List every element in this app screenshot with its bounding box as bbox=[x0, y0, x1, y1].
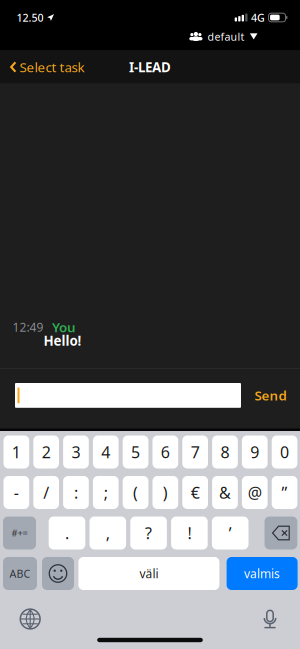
staticText: ’ bbox=[229, 522, 232, 544]
button[interactable]: Select task bbox=[0, 50, 92, 83]
staticText: 0 bbox=[280, 441, 289, 463]
button[interactable]: ( bbox=[123, 476, 148, 509]
staticText: € bbox=[191, 482, 200, 503]
button[interactable]: - bbox=[3, 476, 29, 509]
staticText: 12:49 bbox=[12, 319, 43, 335]
staticText: & bbox=[219, 482, 231, 503]
button[interactable]: . bbox=[49, 516, 85, 549]
button[interactable]: Send bbox=[241, 378, 300, 412]
button[interactable]: ? bbox=[130, 516, 167, 549]
button[interactable]: / bbox=[33, 476, 59, 509]
staticText: 9 bbox=[250, 441, 259, 463]
staticText: ! bbox=[187, 522, 191, 544]
staticText: 7 bbox=[191, 441, 200, 463]
button[interactable]: Delete bbox=[264, 516, 297, 549]
button[interactable]: ABC bbox=[3, 557, 37, 590]
staticText: default bbox=[207, 29, 244, 44]
button[interactable]: 7 bbox=[182, 435, 208, 468]
button[interactable]: 4 bbox=[93, 435, 119, 468]
staticText: 4 bbox=[101, 441, 110, 463]
staticText: : bbox=[74, 482, 78, 503]
staticText: 1 bbox=[12, 441, 21, 463]
button[interactable]: 1 bbox=[3, 435, 29, 468]
button[interactable]: 5 bbox=[123, 435, 148, 468]
staticText: #+= bbox=[11, 527, 27, 539]
button[interactable]: 3 bbox=[63, 435, 89, 468]
button[interactable]: 6 bbox=[152, 435, 178, 468]
staticText: väli bbox=[139, 565, 158, 581]
staticText: Select task bbox=[19, 58, 84, 76]
button[interactable]: Change keyboard bbox=[20, 609, 40, 629]
staticText: valmis bbox=[244, 565, 280, 581]
staticText: , bbox=[106, 522, 110, 544]
staticText: I-LEAD bbox=[129, 58, 171, 76]
button[interactable]: , bbox=[89, 516, 126, 549]
button[interactable]: ) bbox=[152, 476, 178, 509]
button[interactable]: 0 bbox=[272, 435, 297, 468]
staticText: 5 bbox=[131, 441, 140, 463]
button[interactable]: Dictate bbox=[263, 609, 276, 629]
button[interactable] bbox=[0, 383, 241, 408]
button[interactable]: valmis bbox=[227, 557, 298, 590]
staticText: ABC bbox=[9, 566, 30, 581]
staticText: Hello! bbox=[43, 332, 81, 349]
button[interactable]: ” bbox=[272, 476, 297, 509]
button[interactable]: #+= bbox=[3, 516, 36, 549]
staticText: ; bbox=[104, 482, 108, 503]
staticText: 3 bbox=[71, 441, 80, 463]
button[interactable]: default bbox=[190, 28, 257, 44]
staticText: 12.50 bbox=[16, 10, 43, 25]
staticText: 6 bbox=[161, 441, 170, 463]
button[interactable]: @ bbox=[242, 476, 268, 509]
staticText: - bbox=[14, 482, 19, 503]
button[interactable]: ! bbox=[171, 516, 208, 549]
staticText: ( bbox=[133, 482, 138, 503]
staticText: / bbox=[43, 482, 49, 503]
staticText: ? bbox=[145, 522, 152, 544]
staticText: ” bbox=[282, 482, 288, 503]
button[interactable]: Emoji bbox=[42, 557, 74, 590]
button[interactable]: € bbox=[182, 476, 208, 509]
button[interactable]: 9 bbox=[242, 435, 268, 468]
staticText: 2 bbox=[42, 441, 51, 463]
staticText: Send bbox=[254, 386, 286, 404]
staticText: You bbox=[52, 318, 76, 336]
button[interactable]: & bbox=[212, 476, 238, 509]
staticText: @ bbox=[248, 482, 262, 503]
staticText: 4G bbox=[251, 10, 265, 25]
staticText: . bbox=[65, 522, 69, 544]
button[interactable]: 2 bbox=[33, 435, 59, 468]
button[interactable]: väli bbox=[78, 557, 219, 590]
button[interactable]: ’ bbox=[212, 516, 248, 549]
button[interactable]: : bbox=[63, 476, 89, 509]
button[interactable]: ; bbox=[93, 476, 119, 509]
staticText: 8 bbox=[220, 441, 229, 463]
staticText: ) bbox=[163, 482, 168, 503]
button[interactable]: 8 bbox=[212, 435, 238, 468]
